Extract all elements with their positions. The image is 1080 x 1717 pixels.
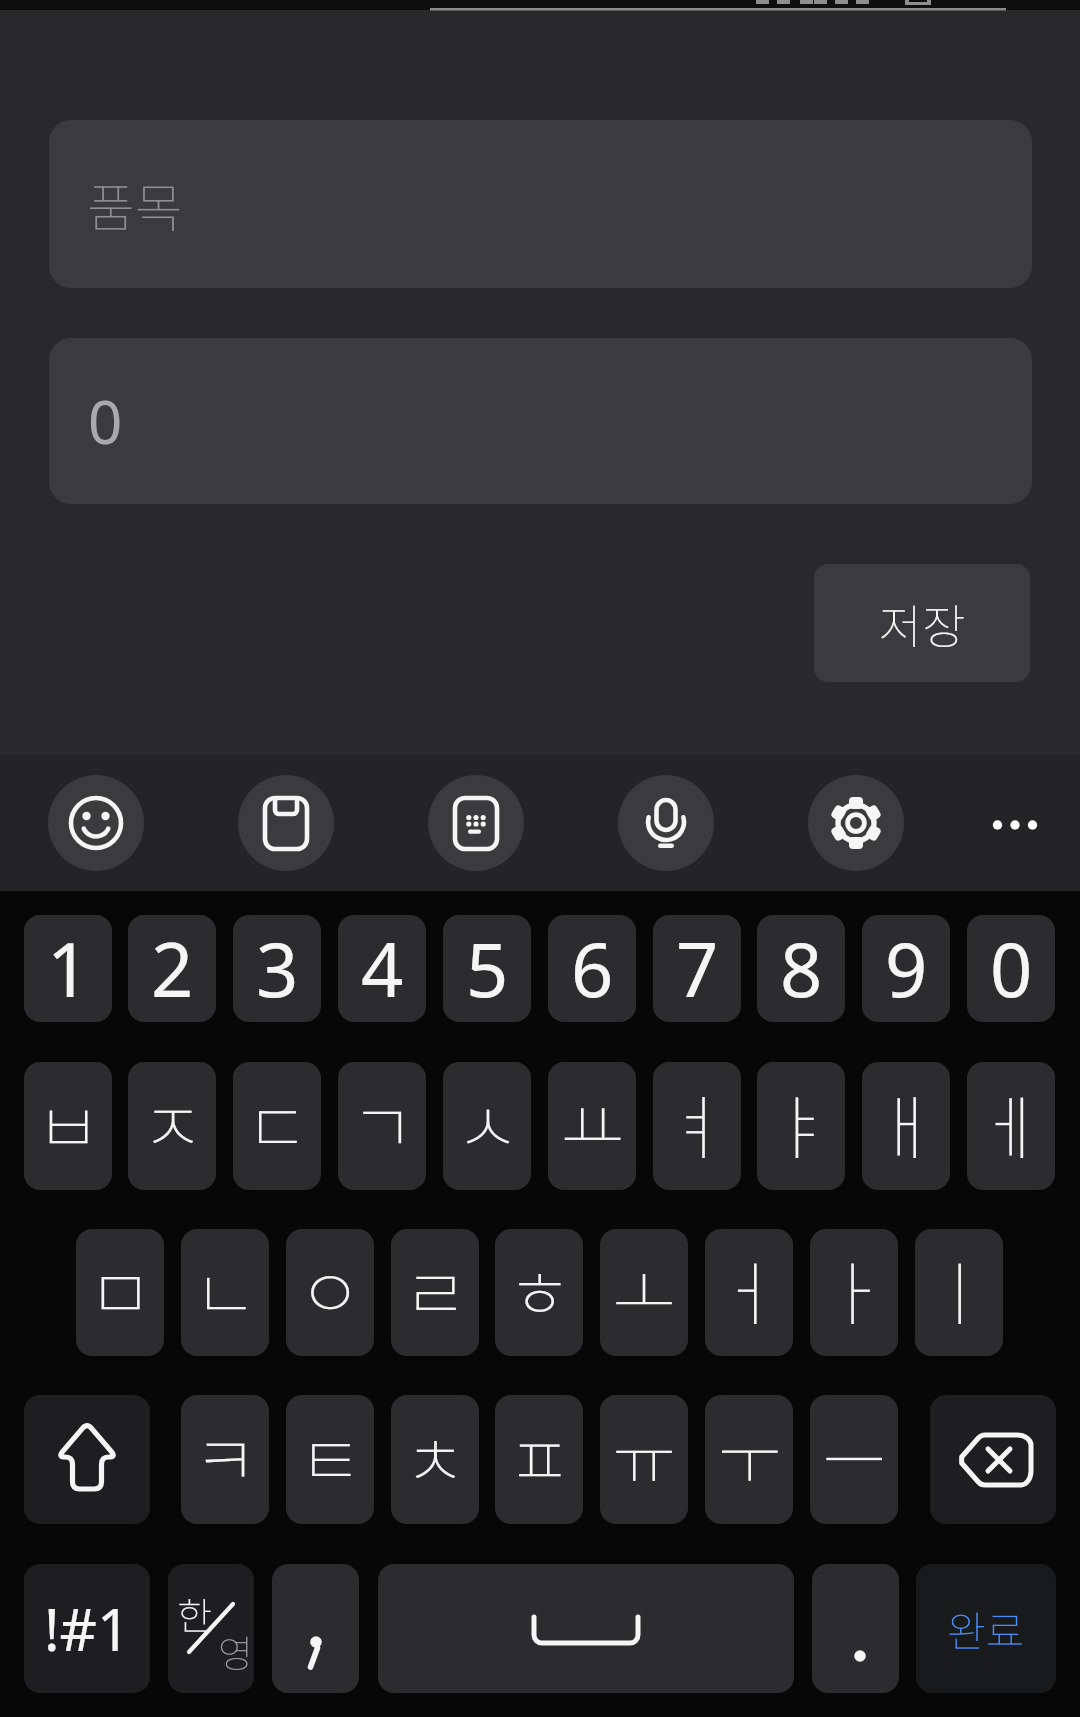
button[interactable]: 한 [168, 1564, 254, 1693]
button[interactable]: 완료 [916, 1564, 1056, 1693]
staticText: 0 [990, 918, 1033, 1019]
staticText: 1 [47, 918, 90, 1019]
button[interactable]: ㅗ [600, 1229, 688, 1356]
staticText: ㄷ [245, 1072, 310, 1173]
button[interactable]: ㅣ [915, 1229, 1003, 1356]
staticText: 9 [885, 918, 928, 1019]
staticText: ㅏ [822, 1238, 887, 1339]
staticText: ㄱ [350, 1072, 415, 1173]
staticText: 6 [571, 918, 614, 1019]
staticText: 7 [676, 918, 719, 1019]
button[interactable]: ㅌ [286, 1395, 374, 1524]
staticText: 저장 [879, 589, 966, 657]
button[interactable] [618, 775, 714, 871]
button[interactable]: ㅋ [181, 1395, 269, 1524]
staticText: 8 [780, 918, 823, 1019]
staticText: ㄹ [403, 1238, 468, 1339]
button[interactable]: ㅓ [705, 1229, 793, 1356]
staticText: ㅂ [36, 1072, 101, 1173]
staticText: ㅠ [612, 1405, 677, 1506]
button[interactable] [808, 775, 904, 871]
button[interactable] [428, 775, 524, 871]
button[interactable]: ㅂ [24, 1062, 112, 1190]
button[interactable] [238, 775, 334, 871]
button[interactable]: ㅁ [76, 1229, 164, 1356]
staticText: 3 [256, 918, 299, 1019]
button[interactable] [272, 1564, 359, 1693]
button[interactable]: ㅔ [967, 1062, 1055, 1190]
button[interactable]: ㅑ [757, 1062, 845, 1190]
button[interactable] [812, 1564, 899, 1693]
button[interactable]: ㅎ [495, 1229, 583, 1356]
button[interactable]: ㄹ [391, 1229, 479, 1356]
button[interactable]: 2 [128, 915, 216, 1022]
button[interactable]: 1 [24, 915, 112, 1022]
staticText: ㅡ [822, 1405, 887, 1506]
staticText: 한 [177, 1586, 212, 1641]
staticText: ㅈ [140, 1072, 205, 1173]
button[interactable]: ㄱ [338, 1062, 426, 1190]
staticText: 5 [466, 918, 509, 1019]
button[interactable]: ㅈ [128, 1062, 216, 1190]
staticText: ㅕ [665, 1072, 730, 1173]
button[interactable]: 3 [233, 915, 321, 1022]
button[interactable]: 7 [653, 915, 741, 1022]
staticText: ㅊ [403, 1405, 468, 1506]
staticText: ㅐ [874, 1072, 939, 1173]
staticText: 품목 [87, 167, 183, 242]
button[interactable]: ㅍ [495, 1395, 583, 1524]
button[interactable]: !#1 [24, 1564, 150, 1693]
staticText: ㅓ [717, 1238, 782, 1339]
button[interactable]: ㅏ [810, 1229, 898, 1356]
staticText: ㄴ [193, 1238, 258, 1339]
button[interactable]: ㅜ [705, 1395, 793, 1524]
button[interactable] [24, 1395, 150, 1524]
staticText: ㅎ [507, 1238, 572, 1339]
staticText: ㅗ [612, 1238, 677, 1339]
button[interactable] [992, 817, 1038, 833]
button[interactable] [48, 775, 144, 871]
button[interactable]: 6 [548, 915, 636, 1022]
staticText: ㅇ [298, 1238, 363, 1339]
button[interactable]: ㅐ [862, 1062, 950, 1190]
button[interactable] [930, 1395, 1056, 1524]
staticText: ㅜ [717, 1405, 782, 1506]
button[interactable] [378, 1564, 794, 1693]
button[interactable]: 저장 [814, 564, 1030, 682]
staticText: ㅅ [455, 1072, 520, 1173]
button[interactable]: 8 [757, 915, 845, 1022]
button[interactable]: 품목 [49, 120, 1032, 288]
staticText: ㅋ [193, 1405, 258, 1506]
button[interactable]: ㅡ [810, 1395, 898, 1524]
staticText: 4 [361, 918, 404, 1019]
button[interactable]: 0 [967, 915, 1055, 1022]
button[interactable]: ㅠ [600, 1395, 688, 1524]
button[interactable]: ㅇ [286, 1229, 374, 1356]
button[interactable]: ㅕ [653, 1062, 741, 1190]
staticText: 2 [151, 918, 194, 1019]
staticText: ㅍ [507, 1405, 572, 1506]
staticText: ㅣ [927, 1238, 992, 1339]
button[interactable]: 4 [338, 915, 426, 1022]
button[interactable]: ㅅ [443, 1062, 531, 1190]
staticText: ㅁ [88, 1238, 153, 1339]
button[interactable]: 5 [443, 915, 531, 1022]
staticText: ㅛ [560, 1072, 625, 1173]
staticText: ㅌ [298, 1405, 363, 1506]
staticText: ㅑ [769, 1072, 834, 1173]
staticText: 완료 [947, 1598, 1025, 1659]
button[interactable]: ㅊ [391, 1395, 479, 1524]
button[interactable]: ㅛ [548, 1062, 636, 1190]
button[interactable]: 9 [862, 915, 950, 1022]
button[interactable]: ㄴ [181, 1229, 269, 1356]
staticText: ㅔ [979, 1072, 1044, 1173]
staticText: !#1 [44, 1589, 131, 1668]
button[interactable]: 0 [49, 338, 1032, 504]
staticText: 영 [218, 1624, 253, 1679]
staticText: 0 [88, 380, 123, 462]
button[interactable]: ㄷ [233, 1062, 321, 1190]
